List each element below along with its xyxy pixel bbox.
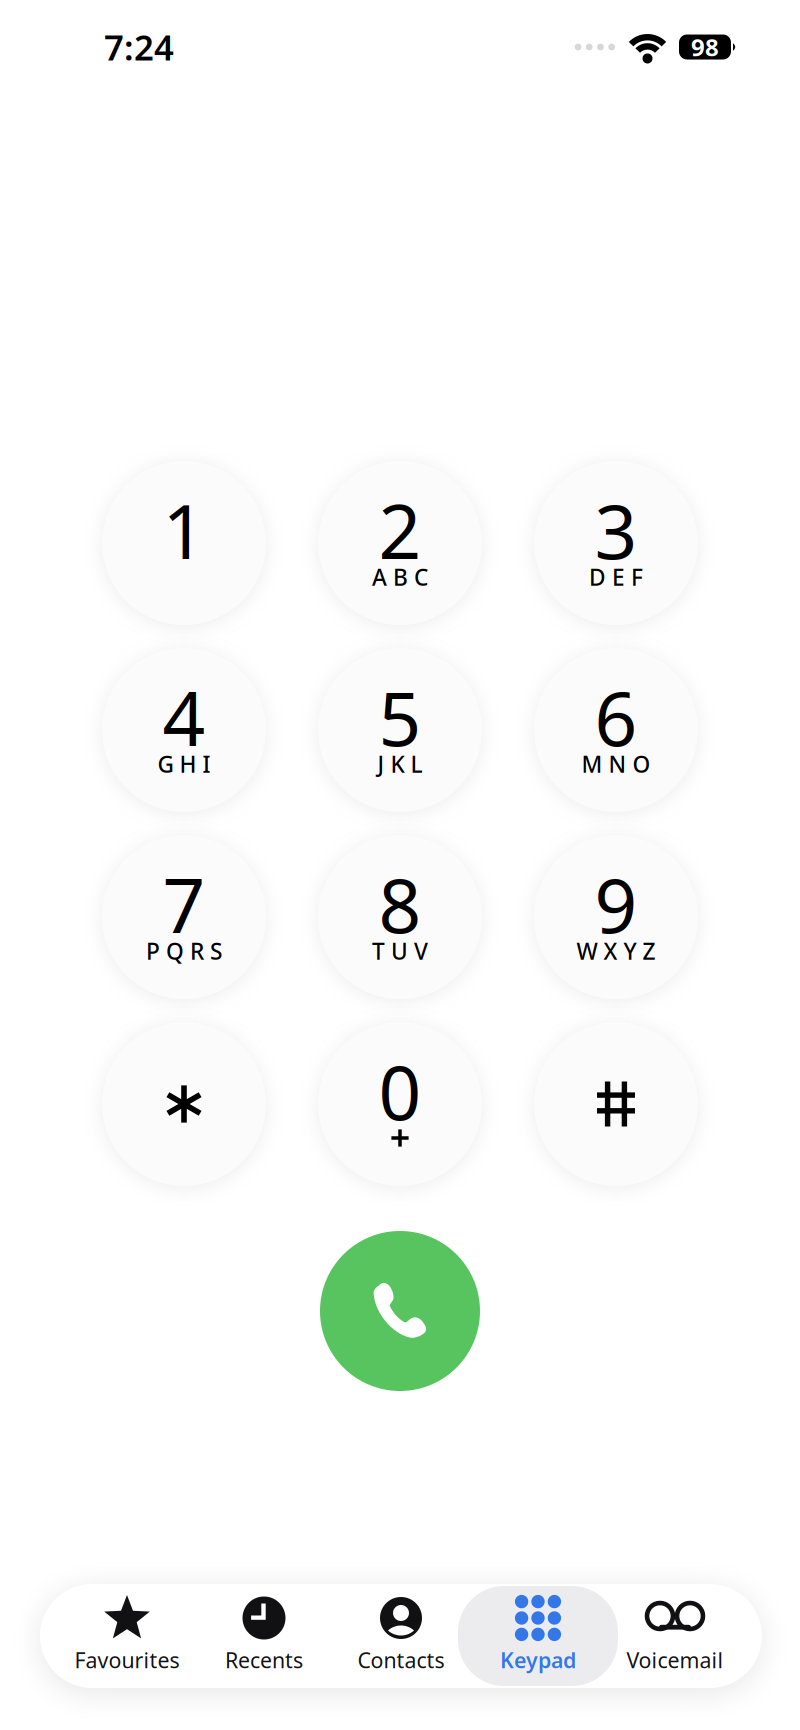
staticText: A B C [372,562,428,592]
button[interactable]: 1 [102,461,266,625]
button[interactable] [102,1022,266,1186]
staticText: Favourites [74,1646,179,1674]
button[interactable]: 3 [534,461,698,625]
staticText: P Q R S [146,936,222,966]
staticText: J K L [377,749,422,779]
button[interactable]: 4 [102,648,266,812]
button[interactable] [534,1022,698,1186]
button[interactable]: 7 [102,835,266,999]
button[interactable]: Call [320,1231,480,1391]
staticText: W X Y Z [576,936,655,966]
staticText: Contacts [357,1646,444,1674]
button[interactable]: Favourites [58,1584,195,1688]
staticText: 6 [594,667,637,767]
staticText: 2 [378,480,421,580]
staticText: 5 [378,667,421,767]
staticText: 1 [162,480,205,580]
staticText: Recents [225,1646,303,1674]
staticText: 0 [378,1041,421,1141]
staticText: T U V [372,936,428,966]
staticText: Voicemail [626,1646,723,1674]
button[interactable]: 6 [534,648,698,812]
button[interactable]: 8 [318,835,482,999]
staticText: 4 [162,667,205,767]
button[interactable]: Recents [195,1584,332,1688]
button[interactable]: 2 [318,461,482,625]
button[interactable]: Keypad [469,1584,606,1688]
button[interactable]: 9 [534,835,698,999]
staticText: 8 [378,854,421,954]
staticText: Keypad [500,1646,576,1674]
staticText: D E F [589,562,643,592]
button[interactable]: 5 [318,648,482,812]
staticText: M N O [581,749,650,779]
staticText: G H I [157,749,210,779]
button[interactable]: Voicemail [606,1584,743,1688]
button[interactable]: Contacts [332,1584,469,1688]
staticText: 3 [594,480,637,580]
staticText: 98 [691,31,719,63]
button[interactable]: 0 [318,1022,482,1186]
staticText: 7 [162,854,205,954]
staticText: 9 [594,854,637,954]
staticText: 7:24 [104,24,174,70]
